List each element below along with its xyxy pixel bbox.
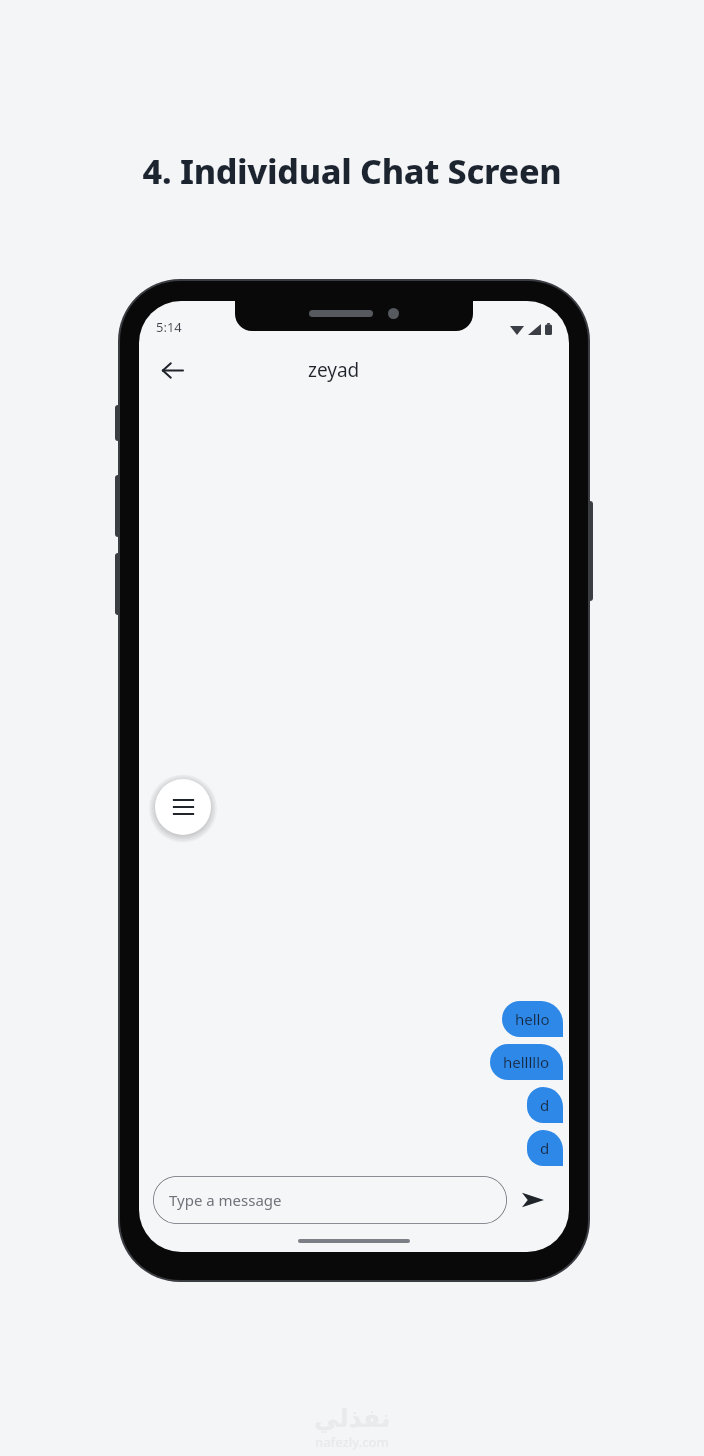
button[interactable]: Back bbox=[151, 349, 193, 391]
button[interactable]: Menu bbox=[155, 779, 211, 835]
staticText: d bbox=[540, 1095, 550, 1115]
staticText: hello bbox=[515, 1009, 550, 1029]
staticText: 4. Individual Chat Screen bbox=[0, 148, 704, 194]
button[interactable]: helllllo bbox=[490, 1044, 563, 1080]
staticText: helllllo bbox=[503, 1052, 550, 1072]
button[interactable]: Send bbox=[513, 1180, 553, 1220]
staticText: d bbox=[540, 1138, 550, 1158]
staticText: 5:14 bbox=[156, 318, 182, 336]
staticText: nafezly.com bbox=[315, 1433, 389, 1451]
staticText: zeyad bbox=[308, 357, 360, 383]
button[interactable]: hello bbox=[502, 1001, 563, 1037]
button[interactable]: d bbox=[527, 1087, 563, 1123]
button[interactable]: d bbox=[527, 1130, 563, 1166]
staticText: Type a message bbox=[169, 1190, 282, 1210]
button[interactable]: Type a message bbox=[153, 1176, 507, 1224]
staticText: نفذلي bbox=[314, 1404, 391, 1433]
